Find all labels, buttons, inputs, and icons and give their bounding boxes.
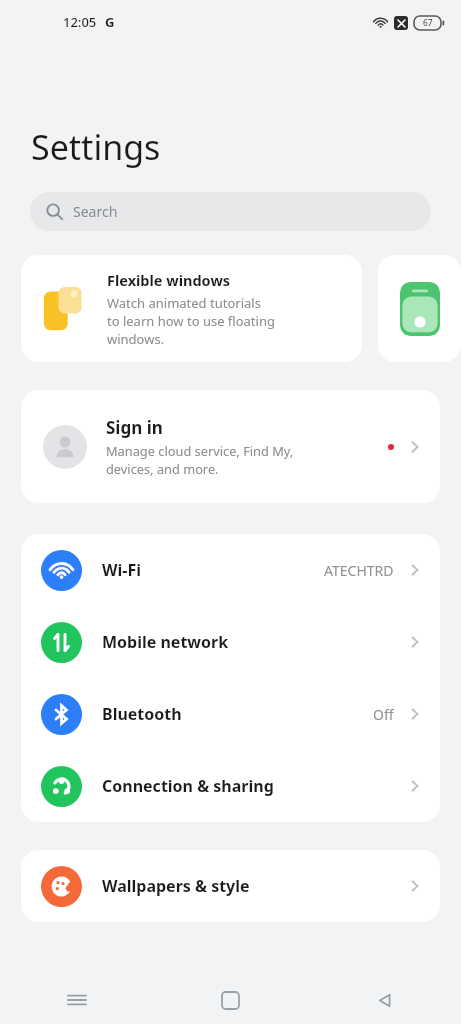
- staticText: Watch animated tutorials to learn how to…: [107, 294, 275, 348]
- button[interactable]: Home: [153, 976, 307, 1024]
- button[interactable]: Bluetooth: [21, 678, 440, 750]
- button[interactable]: Recent apps: [0, 976, 153, 1024]
- staticText: Manage cloud service, Find My, devices, …: [106, 442, 294, 478]
- staticText: Connection & sharing: [102, 775, 274, 797]
- button[interactable]: Device care: [378, 255, 461, 362]
- staticText: Wallpapers & style: [102, 875, 250, 897]
- button[interactable]: Sign in: [21, 390, 440, 503]
- button[interactable]: Mobile network: [21, 606, 440, 678]
- staticText: Sign in: [106, 416, 163, 439]
- staticText: 67: [423, 17, 433, 29]
- button[interactable]: Wi-Fi: [21, 534, 440, 606]
- button[interactable]: Back: [307, 976, 461, 1024]
- staticText: Search: [73, 202, 118, 221]
- staticText: Bluetooth: [102, 703, 182, 725]
- staticText: Mobile network: [102, 631, 229, 653]
- staticText: 12:05: [63, 13, 97, 31]
- button[interactable]: Flexible windows: [21, 255, 362, 362]
- staticText: Off: [373, 705, 394, 724]
- button[interactable]: Wallpapers & style: [21, 850, 440, 922]
- staticText: Flexible windows: [107, 270, 231, 290]
- staticText: Wi-Fi: [102, 559, 141, 581]
- button[interactable]: Connection & sharing: [21, 750, 440, 822]
- staticText: Settings: [31, 124, 161, 170]
- staticText: ATECHTRD: [324, 561, 394, 580]
- staticText: G: [105, 13, 115, 31]
- button[interactable]: Search: [30, 192, 431, 231]
